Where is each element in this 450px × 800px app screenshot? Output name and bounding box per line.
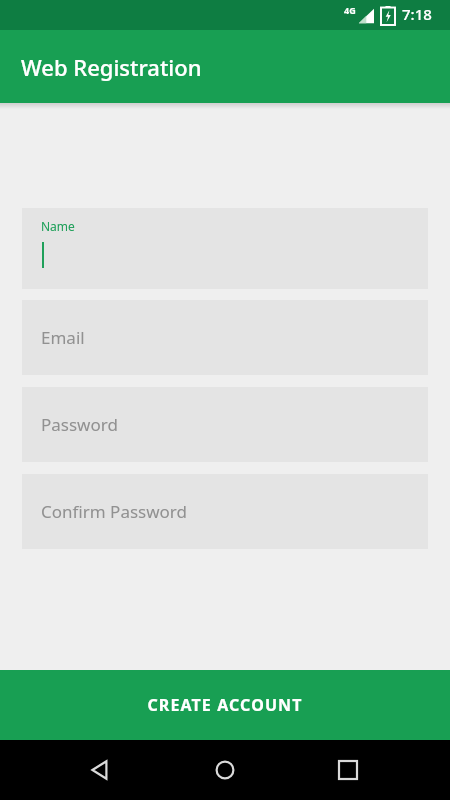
staticText: Email [41,326,85,349]
staticText: CREATE ACCOUNT [147,694,303,716]
button[interactable]: Home [201,740,249,800]
staticText: Name [41,218,75,234]
button[interactable]: Email [22,300,428,375]
button[interactable]: CREATE ACCOUNT [0,670,450,740]
staticText: 4G [344,4,356,16]
staticText: Password [41,413,118,436]
staticText: 7:18 [402,4,432,24]
button[interactable]: Confirm Password [22,474,428,549]
staticText: Confirm Password [41,500,187,523]
button[interactable]: Name [22,208,428,289]
button[interactable]: Recent apps [324,740,372,800]
staticText: Web Registration [21,52,202,82]
button[interactable]: Back [76,740,124,800]
button[interactable]: Password [22,387,428,462]
